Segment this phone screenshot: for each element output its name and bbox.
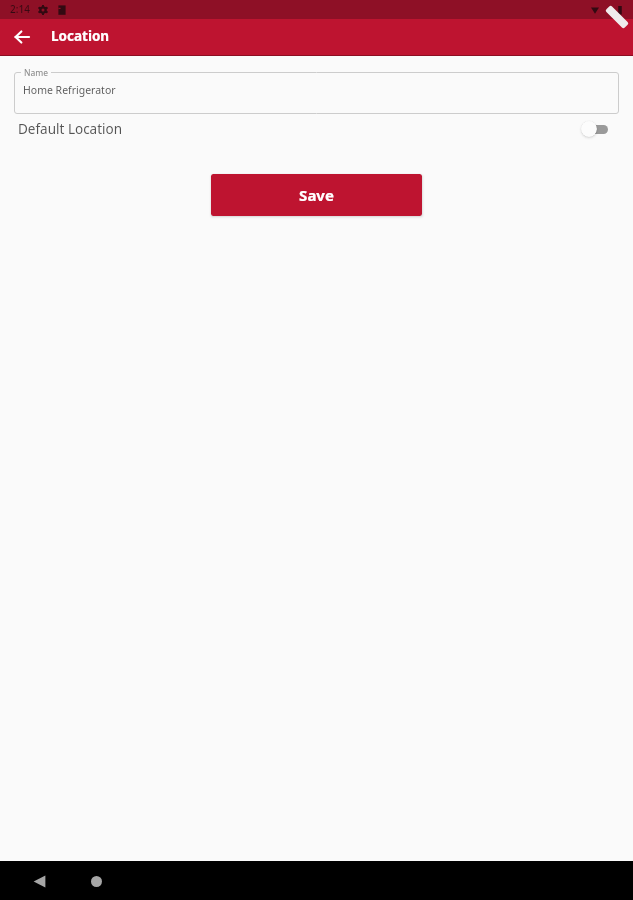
staticText: Default Location (18, 120, 123, 138)
button[interactable]: Save (211, 174, 422, 216)
button[interactable]: Back (4, 19, 40, 55)
button[interactable]: Back (23, 865, 55, 897)
button[interactable]: Home (80, 865, 112, 897)
button[interactable]: Default location toggle (581, 119, 608, 139)
staticText: Save (299, 185, 334, 205)
staticText: Location (51, 27, 110, 45)
staticText: Home Refrigerator (23, 83, 116, 97)
staticText: 2:14 (10, 2, 30, 16)
staticText: Name (24, 67, 48, 79)
button[interactable]: Default Location (0, 116, 633, 142)
button[interactable]: Home Refrigerator (14, 72, 619, 114)
